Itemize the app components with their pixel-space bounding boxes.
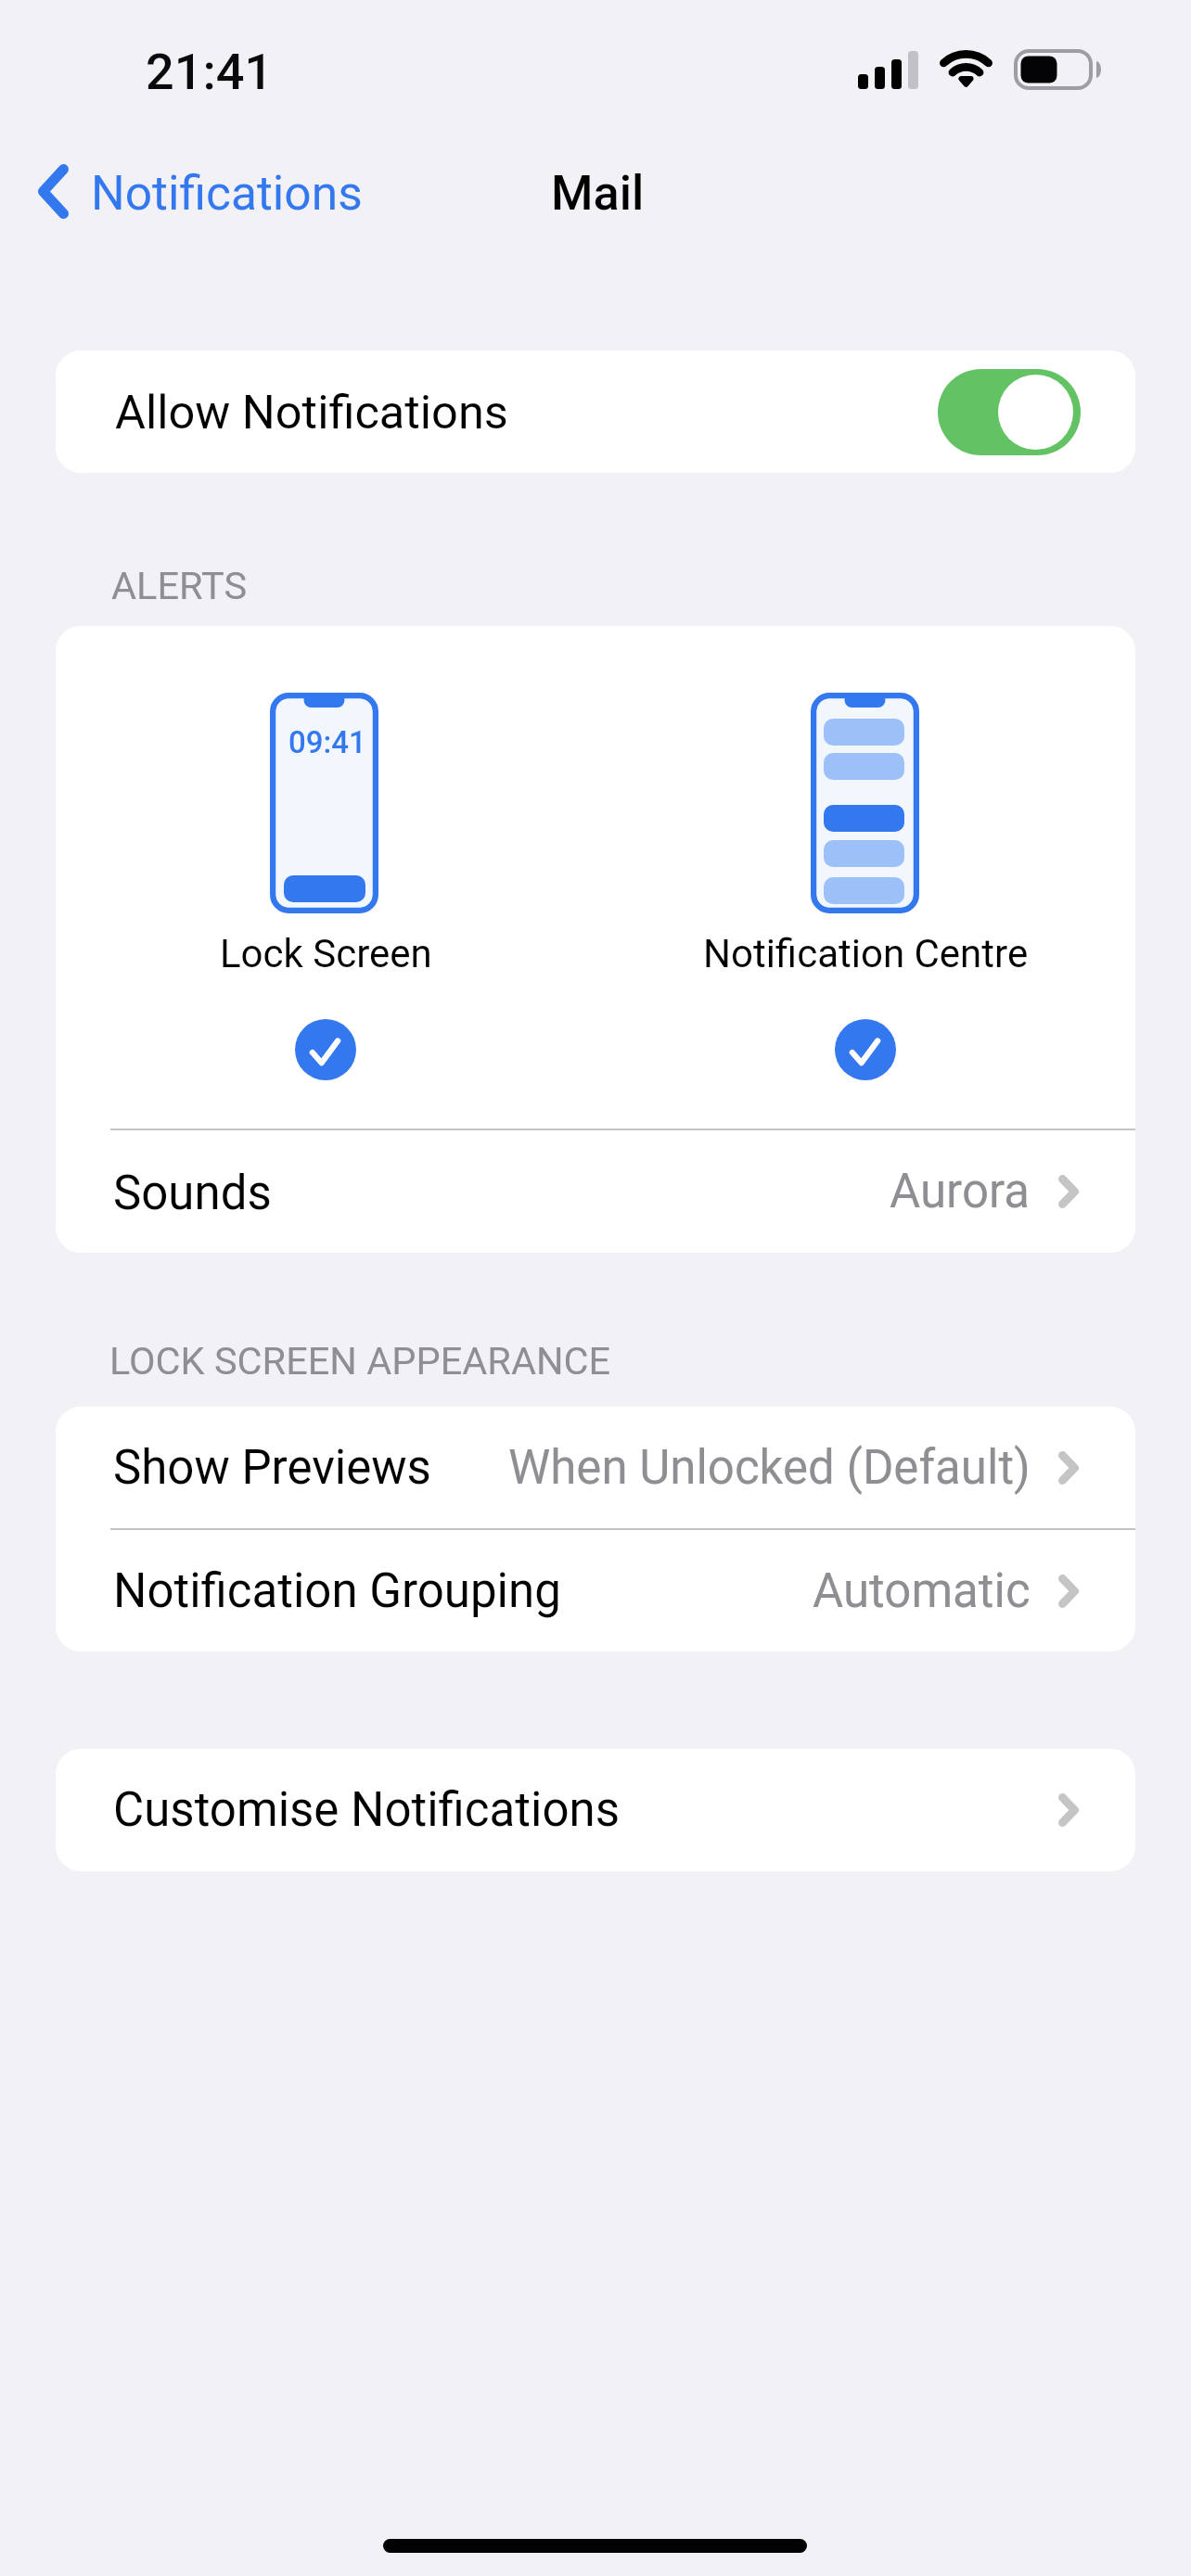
button[interactable]: Customise Notifications [56,1749,1135,1871]
staticText: Aurora [890,1164,1031,1219]
staticText: Lock Screen [220,931,432,976]
staticText: Mail [551,165,645,222]
staticText: Sounds [113,1166,272,1221]
staticText: Customise Notifications [113,1782,620,1838]
button[interactable]: Lock Screen [56,693,595,1080]
staticText: 09:41 [288,724,366,760]
button[interactable]: Back to Notifications [0,155,381,227]
button[interactable]: Notification Centre [595,693,1135,1080]
staticText: Show Previews [113,1440,431,1496]
staticText: 21:41 [146,43,274,101]
staticText: ALERTS [111,563,248,608]
staticText: Notification Grouping [113,1563,561,1619]
staticText: When Unlocked (Default) [508,1440,1031,1496]
button[interactable]: Sounds [56,1130,1135,1253]
staticText: Notification Centre [703,931,1029,976]
button[interactable]: Allow Notifications toggle [938,369,1081,455]
staticText: LOCK SCREEN APPEARANCE [109,1338,611,1384]
button[interactable]: Allow Notifications [56,351,1135,473]
button[interactable]: Notification Grouping [56,1530,1135,1651]
button[interactable]: Show Previews [56,1407,1135,1528]
staticText: Automatic [813,1563,1031,1619]
staticText: Notifications [91,165,363,221]
staticText: Allow Notifications [115,385,508,440]
